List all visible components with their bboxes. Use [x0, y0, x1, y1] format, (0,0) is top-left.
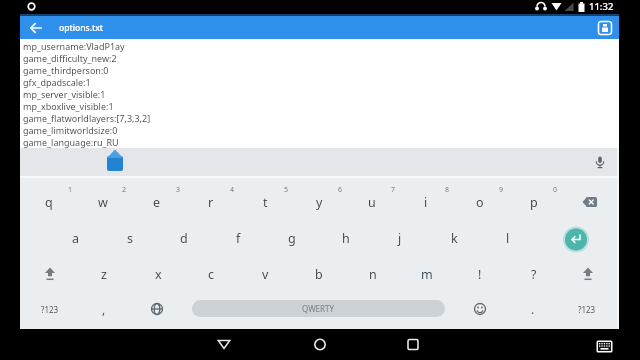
- staticText: 2: [122, 185, 127, 195]
- button[interactable]: o: [460, 189, 500, 215]
- button[interactable]: n: [353, 261, 393, 287]
- staticText: m: [421, 266, 433, 283]
- button[interactable]: [26, 19, 46, 37]
- button[interactable]: k: [434, 225, 474, 251]
- staticText: l: [506, 230, 510, 247]
- button[interactable]: s: [110, 225, 150, 251]
- staticText: game_flatworldlayers:[7,3,3,2]: [23, 112, 151, 124]
- button[interactable]: [578, 264, 598, 284]
- button[interactable]: l: [488, 225, 528, 251]
- staticText: 5: [284, 185, 289, 195]
- staticText: u: [368, 194, 376, 211]
- staticText: w: [98, 194, 108, 211]
- button[interactable]: u: [352, 189, 392, 215]
- button[interactable]: b: [299, 261, 339, 287]
- staticText: h: [342, 230, 350, 247]
- staticText: ?123: [41, 304, 59, 315]
- button[interactable]: ?123: [30, 298, 70, 320]
- staticText: g: [288, 230, 296, 247]
- button[interactable]: w: [83, 189, 123, 215]
- staticText: !: [478, 266, 482, 283]
- staticText: e: [153, 194, 161, 211]
- button[interactable]: f: [218, 225, 258, 251]
- staticText: ?: [531, 266, 537, 283]
- staticText: mp_xboxlive_visible:1: [23, 100, 114, 112]
- staticText: j: [398, 230, 402, 247]
- staticText: mp_server_visible:1: [23, 88, 106, 100]
- staticText: 11:32: [589, 0, 614, 13]
- staticText: a: [72, 230, 80, 247]
- button[interactable]: [564, 227, 590, 253]
- button[interactable]: h: [326, 225, 366, 251]
- staticText: gfx_dpadscale:1: [23, 76, 91, 88]
- button[interactable]: g: [272, 225, 312, 251]
- staticText: 6: [338, 185, 343, 195]
- button[interactable]: c: [191, 261, 231, 287]
- staticText: i: [424, 194, 428, 211]
- staticText: mp_username:VladP1ay: [23, 40, 125, 52]
- button[interactable]: ?: [514, 261, 554, 287]
- button[interactable]: ?123: [567, 298, 607, 320]
- staticText: ,: [102, 301, 106, 317]
- staticText: game_language:ru_RU: [23, 136, 119, 148]
- button[interactable]: r: [191, 189, 231, 215]
- staticText: 3: [176, 185, 181, 195]
- button[interactable]: ,: [89, 298, 119, 320]
- button[interactable]: QWERTY: [192, 300, 445, 317]
- staticText: f: [236, 230, 241, 247]
- button[interactable]: !: [460, 261, 500, 287]
- staticText: options.txt: [59, 22, 104, 34]
- button[interactable]: [214, 337, 234, 353]
- button[interactable]: z: [84, 261, 124, 287]
- button[interactable]: q: [29, 189, 69, 215]
- button[interactable]: [310, 337, 330, 353]
- staticText: game_thirdperson:0: [23, 64, 109, 76]
- staticText: b: [315, 266, 323, 283]
- button[interactable]: .: [518, 298, 548, 320]
- button[interactable]: [403, 337, 423, 353]
- staticText: x: [155, 266, 162, 283]
- button[interactable]: [593, 155, 607, 171]
- staticText: 9: [499, 185, 504, 195]
- button[interactable]: a: [56, 225, 96, 251]
- staticText: v: [262, 266, 269, 283]
- button[interactable]: d: [164, 225, 204, 251]
- button[interactable]: [40, 264, 60, 284]
- staticText: game_limitworldsize:0: [23, 124, 118, 136]
- staticText: c: [208, 266, 215, 283]
- button[interactable]: [595, 339, 614, 354]
- button[interactable]: [470, 299, 490, 319]
- staticText: y: [316, 194, 323, 211]
- button[interactable]: t: [245, 189, 285, 215]
- button[interactable]: x: [138, 261, 178, 287]
- staticText: 7: [391, 185, 396, 195]
- staticText: p: [530, 194, 538, 211]
- staticText: r: [208, 194, 214, 211]
- staticText: game_difficulty_new:2: [23, 52, 117, 64]
- staticText: 4: [230, 185, 235, 195]
- button[interactable]: e: [137, 189, 177, 215]
- staticText: 1: [68, 185, 73, 195]
- staticText: n: [369, 266, 377, 283]
- button[interactable]: y: [299, 189, 339, 215]
- staticText: s: [127, 230, 133, 247]
- staticText: k: [451, 230, 458, 247]
- button[interactable]: [20, 39, 619, 148]
- staticText: 0: [553, 185, 558, 195]
- staticText: .: [531, 301, 535, 317]
- button[interactable]: i: [406, 189, 446, 215]
- staticText: o: [476, 194, 484, 211]
- button[interactable]: [597, 20, 613, 36]
- button[interactable]: [579, 194, 601, 210]
- button[interactable]: v: [245, 261, 285, 287]
- button[interactable]: j: [380, 225, 420, 251]
- staticText: q: [45, 194, 53, 211]
- staticText: t: [263, 194, 268, 211]
- staticText: ?123: [578, 304, 596, 315]
- staticText: 8: [445, 185, 450, 195]
- button[interactable]: [147, 299, 167, 319]
- staticText: QWERTY: [302, 303, 335, 314]
- button[interactable]: p: [514, 189, 554, 215]
- staticText: z: [101, 266, 107, 283]
- button[interactable]: m: [407, 261, 447, 287]
